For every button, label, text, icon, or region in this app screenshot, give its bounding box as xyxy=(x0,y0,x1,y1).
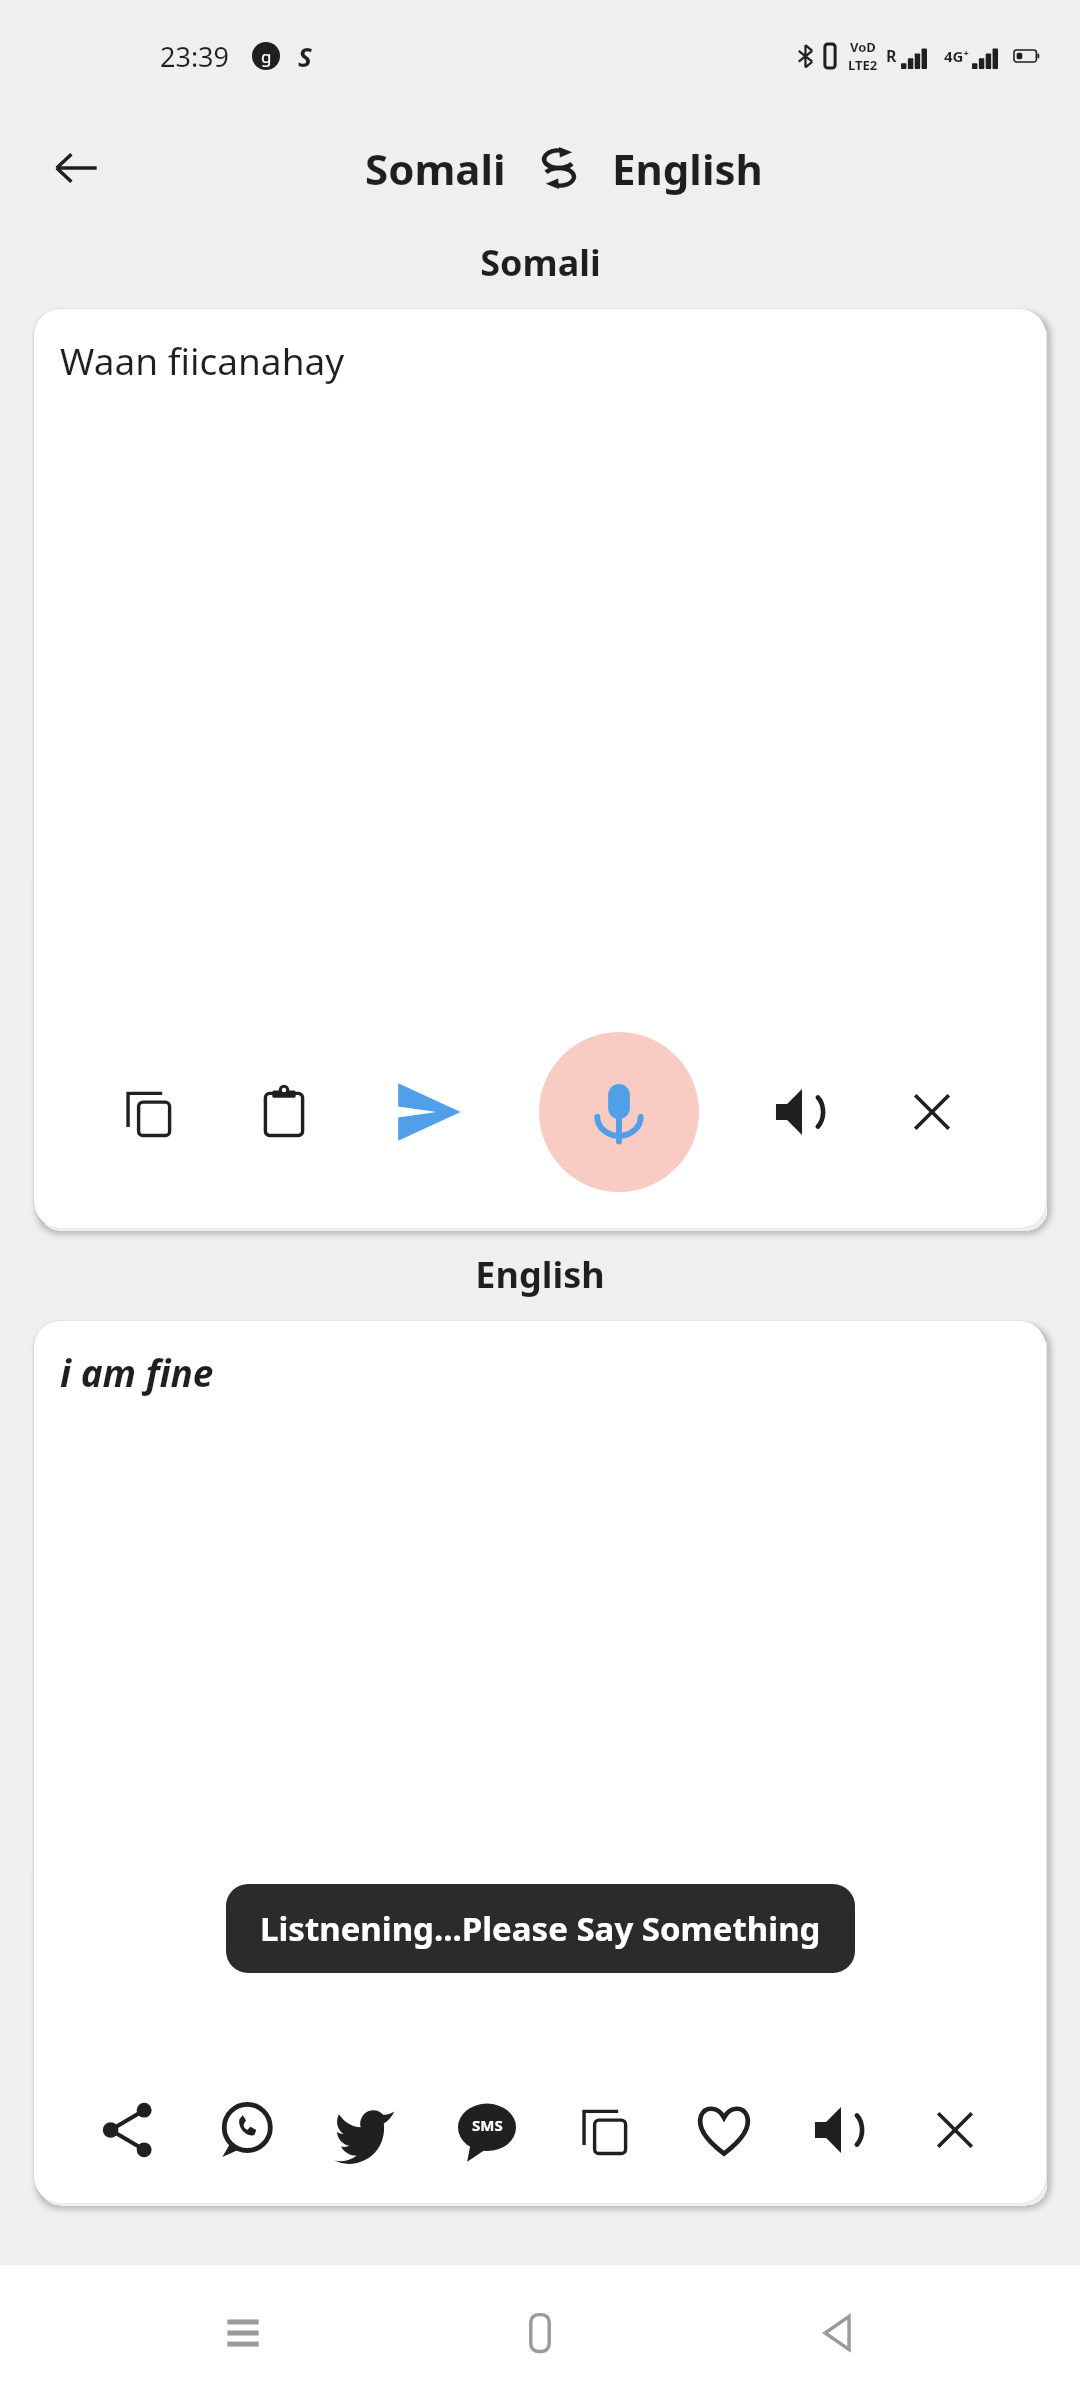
button[interactable]: Back xyxy=(40,132,112,204)
button[interactable]: Favourite xyxy=(693,2099,755,2161)
button[interactable]: Home xyxy=(485,2278,595,2388)
staticText: LTE2 xyxy=(848,56,878,74)
button[interactable]: Recent apps xyxy=(188,2278,298,2388)
staticText: SMS xyxy=(472,2115,503,2135)
staticText: 23:39 xyxy=(160,38,230,75)
button[interactable]: Speak xyxy=(771,1081,833,1143)
button[interactable]: Swap languages xyxy=(532,141,586,195)
staticText: Listnening...Please Say Something xyxy=(260,1906,821,1951)
button[interactable]: Clear xyxy=(927,2102,983,2158)
button[interactable]: Clear xyxy=(904,1084,960,1140)
staticText: i am fine xyxy=(60,1347,214,1397)
button[interactable]: Voice input xyxy=(539,1032,699,1192)
staticText: VoD xyxy=(850,38,876,56)
button[interactable]: Speak xyxy=(810,2099,872,2161)
button[interactable]: WhatsApp xyxy=(214,2098,278,2162)
button[interactable]: Copy xyxy=(576,2099,638,2161)
button[interactable]: Back xyxy=(783,2278,893,2388)
staticText: R xyxy=(886,45,897,67)
staticText: English xyxy=(475,1250,605,1299)
staticText: Waan fiicanahay xyxy=(60,335,345,385)
staticText: English xyxy=(612,140,763,197)
staticText: S xyxy=(298,39,312,74)
staticText: g xyxy=(261,45,272,68)
staticText: Somali xyxy=(480,238,601,287)
button[interactable]: English xyxy=(612,140,763,197)
button[interactable]: Paste xyxy=(253,1081,315,1143)
staticText: Somali xyxy=(365,140,506,197)
button[interactable]: Translate xyxy=(387,1072,467,1152)
button[interactable]: Somali xyxy=(365,140,506,197)
button[interactable]: Copy xyxy=(120,1081,182,1143)
button[interactable]: Share xyxy=(97,2099,159,2161)
button[interactable]: SMS xyxy=(454,2097,520,2163)
staticText: 4G⁺ xyxy=(944,46,969,66)
button[interactable]: Twitter xyxy=(333,2097,399,2163)
